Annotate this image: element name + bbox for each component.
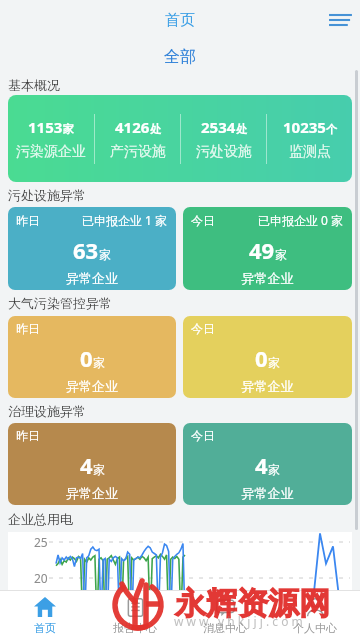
staticText: 家 [275, 247, 287, 262]
staticText: 个人中心 [293, 621, 337, 635]
staticText: 0 [255, 343, 268, 373]
button[interactable]: 今日 [183, 207, 352, 290]
staticText: 首页 [34, 621, 56, 635]
staticText: 污处设施 [196, 143, 252, 161]
staticText: 4 [80, 450, 93, 480]
button[interactable]: 报告中心 [90, 591, 180, 640]
staticText: 异常企业 [191, 270, 344, 286]
staticText: 2534 [201, 117, 236, 137]
staticText: 全部 [164, 47, 196, 67]
staticText: 家 [268, 355, 280, 370]
staticText: 异常企业 [16, 485, 168, 501]
staticText: 异常企业 [191, 485, 344, 501]
staticText: 治理设施异常 [8, 403, 86, 419]
staticText: 昨日 [16, 428, 40, 443]
staticText: 首页 [165, 11, 195, 30]
button[interactable]: 1153 [8, 95, 352, 182]
button[interactable]: 昨日 [8, 316, 176, 398]
button[interactable]: 昨日 [8, 423, 176, 505]
staticText: 已申报企业 1 家 [82, 212, 168, 228]
staticText: 报告中心 [113, 621, 157, 635]
staticText: 昨日 [16, 321, 40, 336]
staticText: 0 [80, 343, 93, 373]
button[interactable]: 首页 [0, 591, 90, 640]
staticText: 消息中心 [203, 621, 247, 635]
staticText: 处 [236, 122, 247, 136]
staticText: 10235 [283, 117, 326, 137]
staticText: 49 [249, 235, 275, 265]
staticText: 污处设施异常 [8, 187, 86, 203]
button[interactable]: 昨日 [8, 207, 176, 290]
staticText: 4126 [115, 117, 150, 137]
staticText: 污染源企业 [16, 143, 86, 161]
staticText: w w w . y h k j j j . c o m [174, 613, 303, 629]
staticText: 今日 [191, 321, 215, 336]
button[interactable]: 今日 [183, 316, 352, 398]
staticText: 处 [150, 122, 161, 136]
staticText: 个 [326, 122, 337, 136]
staticText: 昨日 [16, 213, 40, 228]
staticText: 企业总用电 [8, 511, 73, 527]
staticText: 4 [255, 450, 268, 480]
staticText: 今日 [191, 213, 215, 228]
button[interactable]: 个人中心 [270, 591, 360, 640]
staticText: 家 [63, 122, 74, 136]
staticText: 家 [99, 247, 111, 262]
staticText: 基本概况 [8, 77, 60, 93]
button[interactable]: 今日 [183, 423, 352, 505]
staticText: 大气污染管控异常 [8, 295, 112, 311]
staticText: 今日 [191, 428, 215, 443]
staticText: 25 [34, 534, 48, 550]
button[interactable]: Menu [328, 7, 354, 33]
staticText: 永辉资源网 [175, 584, 330, 623]
staticText: 20 [34, 570, 48, 586]
staticText: 产污设施 [110, 143, 166, 161]
staticText: 家 [268, 462, 280, 477]
button[interactable]: 消息中心 [180, 591, 270, 640]
staticText: 异常企业 [16, 270, 168, 286]
staticText: 监测点 [289, 143, 331, 161]
staticText: 63 [73, 235, 99, 265]
staticText: 家 [93, 355, 105, 370]
staticText: 已申报企业 0 家 [258, 212, 344, 228]
staticText: 异常企业 [191, 378, 344, 394]
staticText: 1153 [28, 117, 63, 137]
staticText: 家 [93, 462, 105, 477]
staticText: 异常企业 [16, 378, 168, 394]
